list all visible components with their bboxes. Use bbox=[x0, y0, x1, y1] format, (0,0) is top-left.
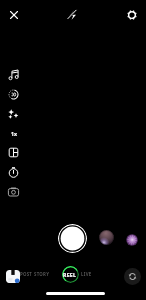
button[interactable]: LIVE bbox=[73, 268, 99, 280]
button[interactable]: Switch camera bbox=[124, 268, 141, 285]
button[interactable]: Effect one bbox=[99, 230, 114, 245]
button[interactable]: Settings bbox=[123, 6, 141, 24]
staticText: 1x bbox=[11, 130, 17, 137]
button[interactable]: Music bbox=[5, 66, 22, 83]
button[interactable]: Reel mode bbox=[62, 266, 79, 283]
staticText: STORY bbox=[34, 271, 50, 277]
button[interactable]: Layout bbox=[5, 144, 22, 161]
button[interactable]: Close bbox=[5, 6, 23, 24]
staticText: REEL bbox=[63, 271, 77, 278]
staticText: POST bbox=[20, 271, 33, 277]
button[interactable]: Open gallery bbox=[6, 270, 20, 283]
button[interactable]: POST bbox=[13, 268, 39, 280]
button[interactable]: Capture bbox=[58, 224, 87, 253]
staticText: LIVE bbox=[81, 271, 92, 277]
button[interactable]: Gallery bbox=[5, 183, 22, 200]
button[interactable]: Effects bbox=[5, 106, 22, 123]
button[interactable]: Playback speed bbox=[5, 86, 22, 103]
button[interactable]: Zoom one times bbox=[5, 125, 22, 142]
button[interactable]: Effect two bbox=[126, 234, 138, 246]
button[interactable]: REEL bbox=[57, 268, 83, 280]
button[interactable]: Flash off bbox=[63, 6, 81, 24]
button[interactable]: Timer bbox=[5, 164, 22, 181]
button[interactable]: STORY bbox=[29, 268, 55, 280]
